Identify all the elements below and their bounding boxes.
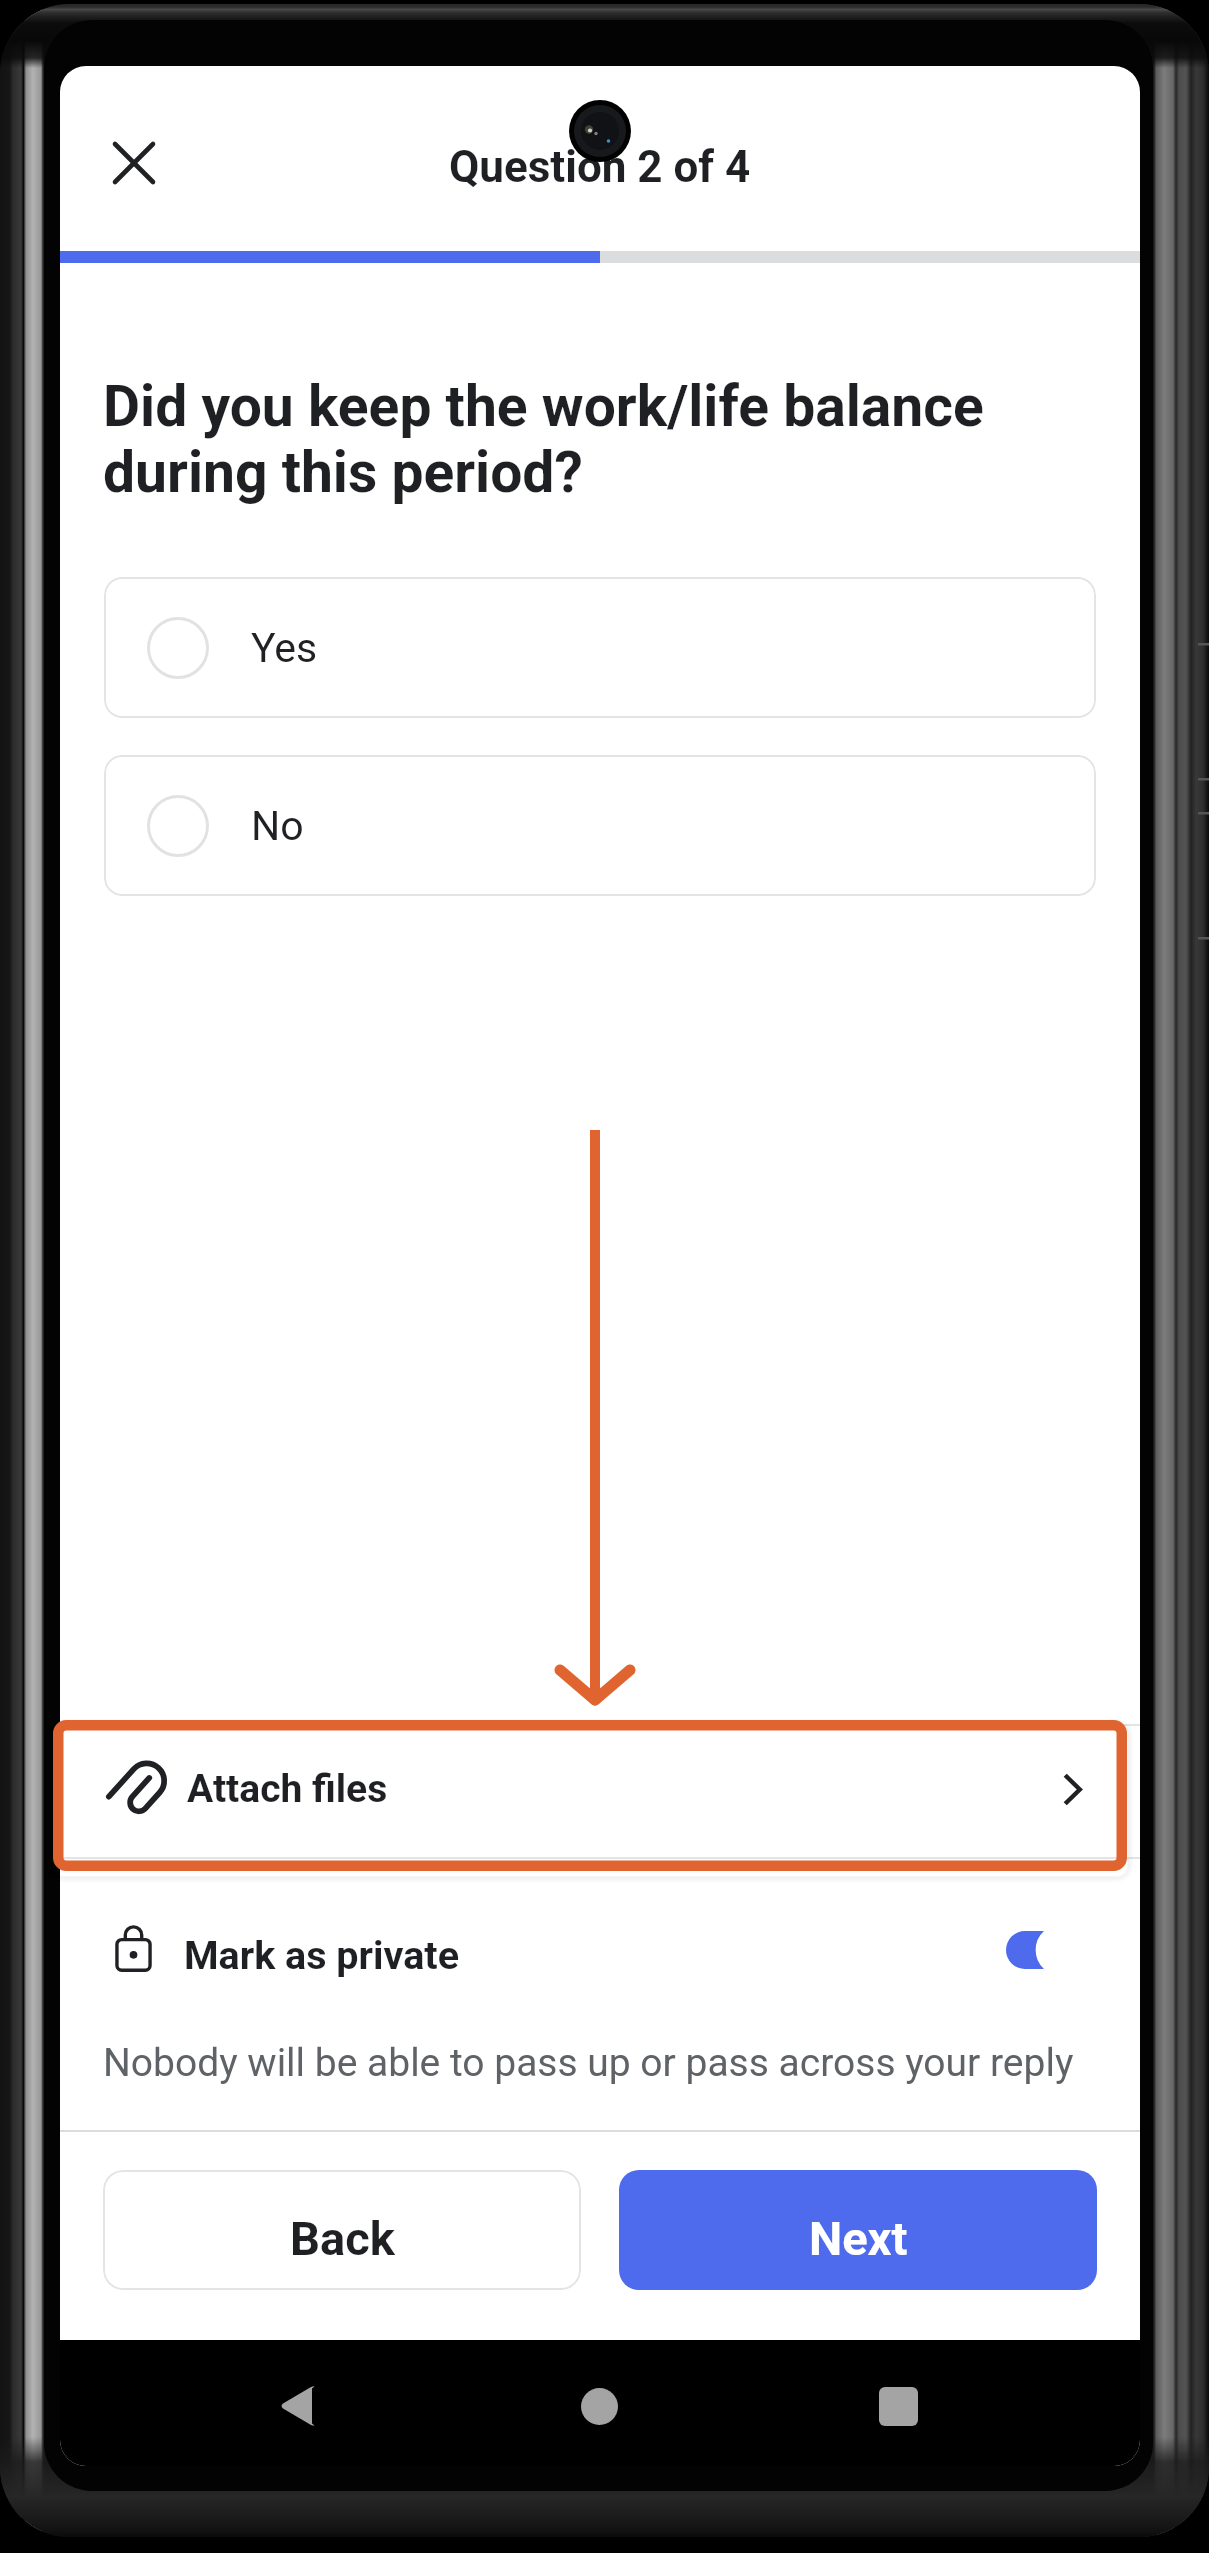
button[interactable]: Home xyxy=(549,2356,649,2456)
staticText: Question 2 of 4 xyxy=(449,141,751,193)
button[interactable]: Recent apps xyxy=(848,2356,948,2456)
staticText: Next xyxy=(809,2211,908,2266)
button[interactable]: Yes xyxy=(104,577,1096,718)
button[interactable]: Attach files xyxy=(60,1726,1140,1857)
staticText: Back xyxy=(290,2211,395,2266)
staticText: Did you keep the work/life balance durin… xyxy=(103,373,1078,506)
staticText: No xyxy=(251,802,304,850)
staticText: Mark as private xyxy=(184,1932,460,1978)
button[interactable]: Back xyxy=(103,2170,581,2290)
button[interactable] xyxy=(60,1859,1140,1999)
button[interactable]: No xyxy=(104,755,1096,896)
button[interactable]: Next xyxy=(619,2170,1097,2290)
staticText: Nobody will be able to pass up or pass a… xyxy=(103,2040,1074,2086)
staticText: Yes xyxy=(251,624,318,672)
button[interactable]: Back xyxy=(248,2356,348,2456)
button[interactable]: Close xyxy=(80,109,188,217)
staticText: Attach files xyxy=(187,1766,388,1812)
